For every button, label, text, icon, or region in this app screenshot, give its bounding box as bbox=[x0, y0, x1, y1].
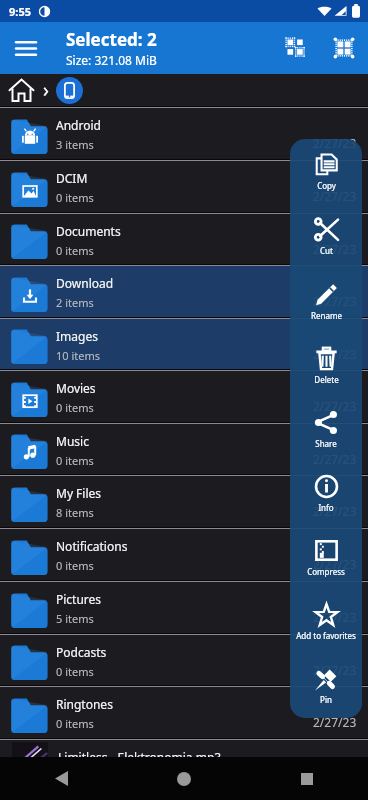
button[interactable]: My Files bbox=[0, 476, 368, 529]
staticText: Limitless - Elektronomia.mp3 bbox=[58, 749, 222, 765]
staticText: 2/27/23 bbox=[313, 451, 357, 467]
staticText: Movies bbox=[56, 380, 96, 396]
button[interactable]: Notifications bbox=[0, 529, 368, 582]
button[interactable]: Pictures bbox=[0, 582, 368, 635]
staticText: Pin bbox=[320, 694, 332, 705]
staticText: Selected: 2 bbox=[66, 28, 157, 51]
button[interactable]: Internal storage bbox=[56, 77, 83, 104]
button[interactable]: Pin bbox=[290, 654, 362, 718]
staticText: Delete bbox=[314, 374, 339, 385]
staticText: Rename bbox=[311, 310, 342, 321]
staticText: Copy bbox=[317, 180, 336, 191]
button[interactable]: Compress bbox=[290, 526, 362, 590]
staticText: Music bbox=[56, 433, 89, 449]
staticText: Android bbox=[56, 117, 101, 133]
staticText: Info bbox=[318, 502, 334, 513]
staticText: DCIM bbox=[56, 170, 88, 186]
button[interactable]: Home bbox=[5, 74, 37, 106]
button[interactable]: Home bbox=[122, 757, 245, 800]
button[interactable]: Podcasts bbox=[0, 635, 368, 687]
staticText: 0 items bbox=[56, 716, 94, 731]
staticText: Images bbox=[56, 328, 98, 344]
staticText: Documents bbox=[56, 223, 121, 239]
button[interactable]: Recents bbox=[245, 757, 368, 800]
button[interactable]: Images bbox=[0, 319, 368, 371]
staticText: › bbox=[43, 77, 49, 103]
button[interactable]: Select all bbox=[320, 22, 367, 74]
button[interactable]: Menu bbox=[0, 22, 52, 74]
staticText: 9:55 bbox=[9, 4, 31, 19]
button[interactable]: Documents bbox=[0, 214, 368, 266]
staticText: Size: 321.08 MiB bbox=[66, 52, 157, 68]
button[interactable]: Info bbox=[290, 462, 362, 526]
staticText: 2/27/23 bbox=[313, 346, 357, 362]
button[interactable]: Cut bbox=[290, 204, 362, 269]
staticText: 0 items bbox=[56, 664, 94, 679]
staticText: Compress bbox=[307, 566, 345, 577]
button[interactable]: Select multiple bbox=[272, 22, 320, 74]
staticText: 2/27/23 bbox=[313, 714, 357, 730]
staticText: 0 items bbox=[56, 453, 94, 468]
staticText: 5 items bbox=[56, 611, 94, 626]
staticText: Pictures bbox=[56, 591, 102, 607]
button[interactable]: Copy bbox=[290, 139, 362, 204]
staticText: Download bbox=[56, 275, 114, 291]
staticText: Add to favorites bbox=[296, 630, 356, 641]
staticText: 8 items bbox=[56, 505, 94, 520]
staticText: 2/27/23 bbox=[313, 293, 357, 309]
staticText: 0 items bbox=[56, 558, 94, 573]
staticText: 0 items bbox=[56, 190, 94, 205]
staticText: 3 items bbox=[56, 137, 94, 152]
staticText: 2/27/23 bbox=[313, 556, 357, 572]
staticText: My Files bbox=[56, 485, 102, 501]
button[interactable]: Movies bbox=[0, 371, 368, 424]
staticText: 2/27/23 bbox=[313, 241, 357, 257]
staticText: 0 items bbox=[56, 400, 94, 415]
button[interactable]: Android bbox=[0, 108, 368, 161]
button[interactable]: Back bbox=[0, 757, 122, 800]
button[interactable]: Delete bbox=[290, 334, 362, 398]
staticText: 2/27/23 bbox=[313, 188, 357, 204]
button[interactable]: Limitless - Elektronomia.mp3 bbox=[0, 740, 368, 793]
staticText: 3.24 MiB bbox=[58, 769, 103, 784]
staticText: 2 items bbox=[56, 295, 94, 310]
staticText: 2/27/23 bbox=[313, 503, 357, 519]
button[interactable]: Ringtones bbox=[0, 687, 368, 740]
staticText: 2/27/23 bbox=[313, 662, 357, 678]
staticText: 0 items bbox=[56, 243, 94, 258]
button[interactable]: Rename bbox=[290, 269, 362, 334]
staticText: Podcasts bbox=[56, 644, 107, 660]
staticText: Ringtones bbox=[56, 696, 113, 712]
staticText: Cut bbox=[320, 245, 333, 256]
button[interactable]: Share bbox=[290, 398, 362, 462]
staticText: 2/27/23 bbox=[313, 609, 357, 625]
staticText: 2/27/23 bbox=[313, 135, 357, 151]
staticText: Notifications bbox=[56, 538, 128, 554]
staticText: 10 items bbox=[56, 348, 101, 363]
staticText: 2/27/23 bbox=[313, 398, 357, 414]
button[interactable]: DCIM bbox=[0, 161, 368, 214]
staticText: Share bbox=[315, 438, 337, 449]
button[interactable]: Music bbox=[0, 424, 368, 476]
button[interactable]: Download bbox=[0, 266, 368, 319]
button[interactable]: Add to favorites bbox=[290, 590, 362, 654]
